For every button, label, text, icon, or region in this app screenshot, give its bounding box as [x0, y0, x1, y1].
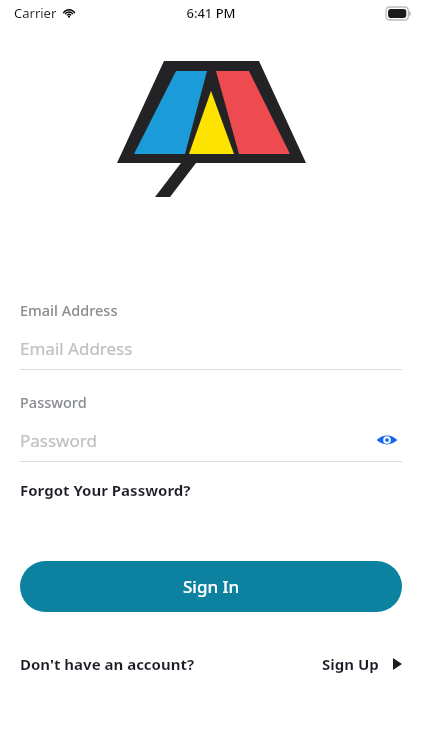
button[interactable]: Show password [372, 426, 402, 454]
staticText: Carrier [14, 4, 57, 22]
button[interactable]: Sign Up [322, 654, 402, 674]
staticText: Email Address [20, 300, 118, 320]
button[interactable]: Password [20, 426, 372, 454]
staticText: Sign Up [322, 654, 379, 674]
staticText: Sign In [183, 575, 240, 598]
staticText: Don't have an account? [20, 654, 195, 674]
staticText: Password [20, 392, 87, 412]
staticText: Email Address [20, 337, 133, 360]
staticText: Password [20, 429, 97, 452]
staticText: Forgot Your Password? [20, 480, 191, 500]
staticText: 6:41 PM [186, 4, 236, 22]
button[interactable]: Forgot Your Password? [20, 480, 191, 500]
button[interactable]: Sign In [20, 561, 402, 612]
button[interactable]: Email Address [20, 334, 402, 362]
